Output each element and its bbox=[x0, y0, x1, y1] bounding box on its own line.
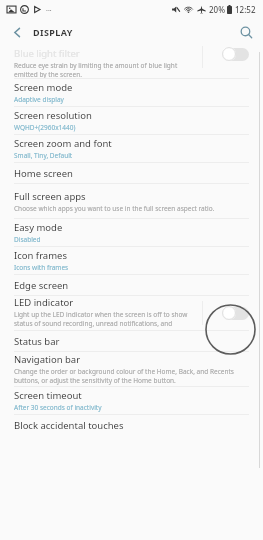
staticText: Home screen bbox=[14, 167, 73, 180]
button[interactable]: Blue light filter bbox=[0, 46, 263, 78]
staticText: Icon frames bbox=[14, 249, 67, 262]
staticText: Easy mode bbox=[14, 221, 63, 234]
staticText: ... bbox=[46, 4, 52, 14]
staticText: Small, Tiny, Default bbox=[14, 151, 73, 160]
staticText: Block accidental touches bbox=[14, 419, 124, 432]
button[interactable]: Icon frames bbox=[0, 247, 263, 274]
staticText: 20% bbox=[209, 4, 225, 15]
staticText: Screen resolution bbox=[14, 109, 92, 122]
staticText: WQHD+(2960x1440) bbox=[14, 123, 76, 132]
button[interactable]: Full screen apps bbox=[0, 184, 263, 218]
button[interactable]: Navigation bar bbox=[0, 352, 263, 386]
staticText: Full screen apps bbox=[14, 190, 86, 203]
button[interactable]: Edge screen bbox=[0, 275, 263, 295]
staticText: Edge screen bbox=[14, 279, 69, 292]
button[interactable]: Screen zoom and font bbox=[0, 135, 263, 162]
staticText: 12:52 bbox=[235, 4, 256, 15]
button[interactable]: Block accidental touches bbox=[0, 415, 263, 435]
staticText: Screen mode bbox=[14, 81, 73, 94]
button[interactable]: LED indicator toggle bbox=[222, 306, 249, 320]
staticText: Change the order or background colour of… bbox=[14, 367, 247, 385]
staticText: After 30 seconds of inactivity bbox=[14, 403, 102, 412]
button[interactable]: Search bbox=[235, 21, 257, 43]
staticText: Light up the LED indicator when the scre… bbox=[14, 310, 191, 330]
button[interactable]: Status bar bbox=[0, 331, 263, 351]
button[interactable]: Back bbox=[6, 21, 28, 43]
button[interactable]: Home screen bbox=[0, 163, 263, 183]
button[interactable]: Screen mode bbox=[0, 79, 263, 106]
staticText: Navigation bar bbox=[14, 353, 81, 366]
staticText: Blue light filter bbox=[14, 47, 80, 60]
button[interactable]: Easy mode bbox=[0, 219, 263, 246]
button[interactable]: LED indicator bbox=[0, 296, 263, 330]
button[interactable]: Screen timeout bbox=[0, 387, 263, 414]
staticText: DISPLAY bbox=[33, 26, 73, 38]
staticText: Reduce eye strain by limiting the amount… bbox=[14, 61, 191, 78]
button[interactable]: Screen resolution bbox=[0, 107, 263, 134]
staticText: Choose which apps you want to use in the… bbox=[14, 204, 215, 213]
staticText: LED indicator bbox=[14, 296, 74, 309]
staticText: Screen zoom and font bbox=[14, 137, 112, 150]
staticText: Status bar bbox=[14, 335, 60, 348]
staticText: Icons with frames bbox=[14, 263, 69, 272]
staticText: Disabled bbox=[14, 235, 41, 244]
staticText: Adaptive display bbox=[14, 95, 64, 104]
staticText: Screen timeout bbox=[14, 389, 82, 402]
